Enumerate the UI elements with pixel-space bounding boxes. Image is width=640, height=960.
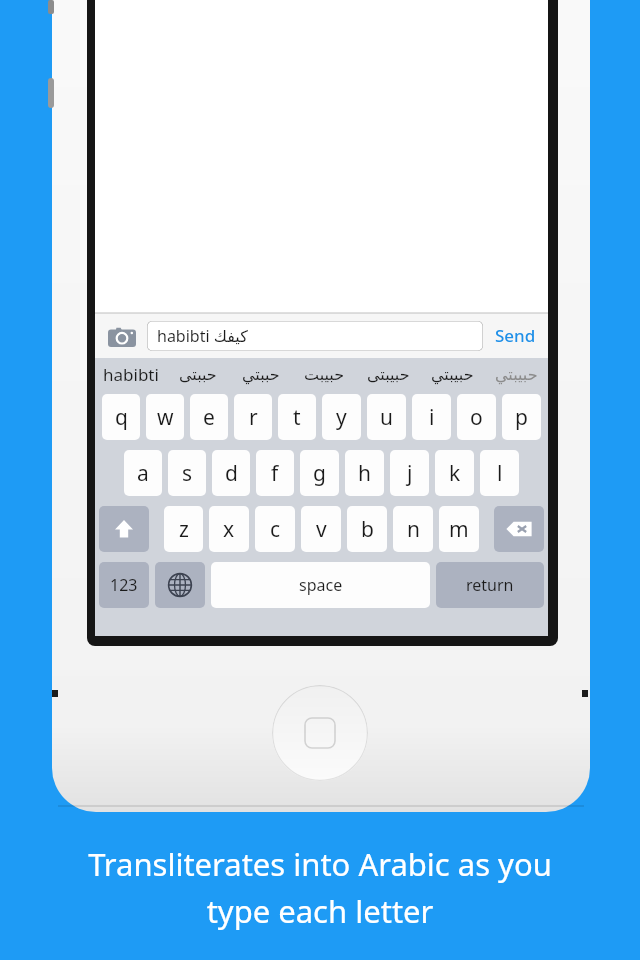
- button[interactable]: 123: [99, 562, 149, 608]
- button[interactable]: i: [412, 394, 451, 440]
- button[interactable]: x: [209, 506, 249, 552]
- staticText: حبيبتى: [367, 365, 410, 384]
- button[interactable]: a: [124, 450, 162, 496]
- button[interactable]: return: [436, 562, 544, 608]
- button[interactable]: q: [102, 394, 140, 440]
- staticText: حبيبت: [304, 365, 345, 384]
- button[interactable]: y: [322, 394, 361, 440]
- button[interactable]: k: [435, 450, 474, 496]
- button[interactable]: v: [301, 506, 341, 552]
- button[interactable]: z: [164, 506, 203, 552]
- staticText: حببتى: [179, 365, 217, 384]
- button[interactable]: o: [457, 394, 496, 440]
- staticText: x: [223, 515, 235, 544]
- staticText: f: [271, 459, 279, 488]
- button[interactable]: space: [211, 562, 430, 608]
- button[interactable]: حببتي: [230, 358, 292, 391]
- staticText: habibti: [103, 363, 159, 386]
- staticText: حببتي: [242, 365, 280, 384]
- button[interactable]: حبيبتي: [485, 358, 548, 391]
- button[interactable]: r: [234, 394, 272, 440]
- staticText: حبيبتي: [495, 365, 538, 384]
- button[interactable]: Change keyboard: [155, 562, 205, 608]
- button[interactable]: حبيبتي: [421, 358, 484, 391]
- staticText: k: [449, 459, 461, 488]
- staticText: i: [429, 403, 435, 432]
- button[interactable]: j: [390, 450, 429, 496]
- staticText: z: [179, 515, 189, 544]
- button[interactable]: w: [146, 394, 184, 440]
- button[interactable]: d: [212, 450, 250, 496]
- staticText: w: [157, 403, 174, 432]
- staticText: y: [336, 403, 347, 432]
- staticText: p: [515, 403, 528, 432]
- staticText: Transliterates into Arabic as you type e…: [88, 843, 552, 932]
- staticText: space: [299, 574, 343, 596]
- staticText: o: [470, 403, 483, 432]
- button[interactable]: u: [367, 394, 406, 440]
- staticText: r: [249, 403, 258, 432]
- button[interactable]: m: [439, 506, 479, 552]
- button[interactable]: e: [190, 394, 228, 440]
- staticText: n: [407, 515, 420, 544]
- button[interactable]: g: [300, 450, 339, 496]
- staticText: t: [293, 403, 301, 432]
- staticText: Send: [495, 324, 536, 347]
- button[interactable]: حبيبت: [293, 358, 356, 391]
- button[interactable]: b: [347, 506, 387, 552]
- button[interactable]: habibti: [95, 358, 166, 391]
- button[interactable]: h: [345, 450, 384, 496]
- staticText: q: [115, 403, 128, 432]
- staticText: habibti كيفك: [157, 325, 248, 347]
- button[interactable]: f: [256, 450, 294, 496]
- staticText: l: [497, 459, 503, 488]
- staticText: g: [313, 459, 326, 488]
- button[interactable]: Shift: [99, 506, 149, 552]
- staticText: a: [137, 459, 149, 488]
- button[interactable]: Send: [493, 324, 538, 347]
- button[interactable]: habibti كيفك: [147, 321, 483, 351]
- staticText: s: [182, 459, 193, 488]
- button[interactable]: حبيبتى: [357, 358, 420, 391]
- button[interactable]: Home: [272, 685, 368, 781]
- staticText: h: [358, 459, 371, 488]
- button[interactable]: l: [480, 450, 519, 496]
- button[interactable]: c: [255, 506, 295, 552]
- staticText: 123: [110, 574, 138, 596]
- button[interactable]: p: [502, 394, 541, 440]
- staticText: b: [361, 515, 374, 544]
- staticText: m: [449, 515, 469, 544]
- button[interactable]: t: [278, 394, 316, 440]
- button[interactable]: n: [393, 506, 433, 552]
- button[interactable]: Camera: [105, 319, 139, 353]
- staticText: e: [203, 403, 215, 432]
- staticText: u: [380, 403, 393, 432]
- button[interactable]: Backspace: [494, 506, 544, 552]
- staticText: v: [316, 515, 327, 544]
- button[interactable]: حببتى: [167, 358, 229, 391]
- staticText: c: [270, 515, 281, 544]
- staticText: return: [466, 574, 514, 596]
- staticText: j: [407, 459, 413, 488]
- button[interactable]: s: [168, 450, 206, 496]
- staticText: حبيبتي: [431, 365, 474, 384]
- staticText: d: [225, 459, 238, 488]
